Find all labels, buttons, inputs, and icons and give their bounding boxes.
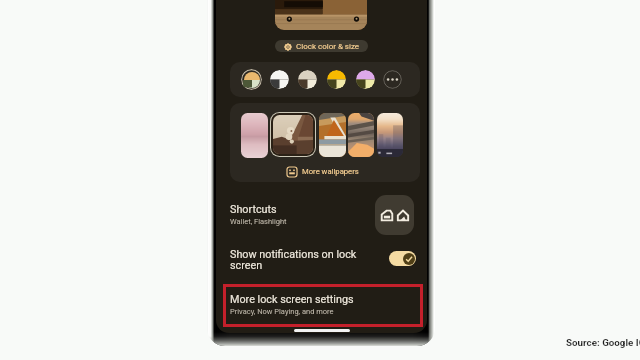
button[interactable]: More colours xyxy=(383,70,402,89)
button[interactable]: Lock screen preview xyxy=(275,0,367,30)
staticText: More wallpapers xyxy=(302,167,359,176)
button[interactable]: Wallpaper option xyxy=(241,113,268,158)
button[interactable]: More wallpapers xyxy=(287,165,359,178)
button[interactable]: Wallpaper option xyxy=(348,113,374,157)
button[interactable]: Colour option xyxy=(241,69,262,90)
button[interactable]: Colour option xyxy=(270,70,289,89)
staticText: Wallet, Flashlight xyxy=(230,217,287,226)
staticText: Show notifications on lock screen xyxy=(230,248,362,272)
button[interactable]: More lock screen settings xyxy=(223,284,423,327)
button[interactable]: Selected wallpaper xyxy=(273,115,313,154)
button[interactable]: Wallpaper option xyxy=(377,113,403,157)
button[interactable]: Colour option xyxy=(298,70,317,89)
staticText: More lock screen settings xyxy=(230,293,354,306)
button[interactable]: Wallpaper option xyxy=(319,113,346,157)
button[interactable]: Show notifications on lock screen xyxy=(216,240,427,280)
button[interactable]: Colour option xyxy=(356,70,375,89)
button[interactable]: Clock color & size xyxy=(275,40,368,52)
staticText: Clock color & size xyxy=(296,42,360,51)
button[interactable]: Edit shortcuts xyxy=(375,195,414,235)
staticText: Source: Google IO xyxy=(566,337,640,348)
button[interactable]: Colour option xyxy=(327,70,346,89)
button[interactable]: Toggle show notifications on lock screen xyxy=(389,251,416,266)
staticText: Privacy, Now Playing, and more xyxy=(230,307,334,316)
staticText: Shortcuts xyxy=(230,203,277,216)
button[interactable]: Shortcuts xyxy=(216,191,427,237)
